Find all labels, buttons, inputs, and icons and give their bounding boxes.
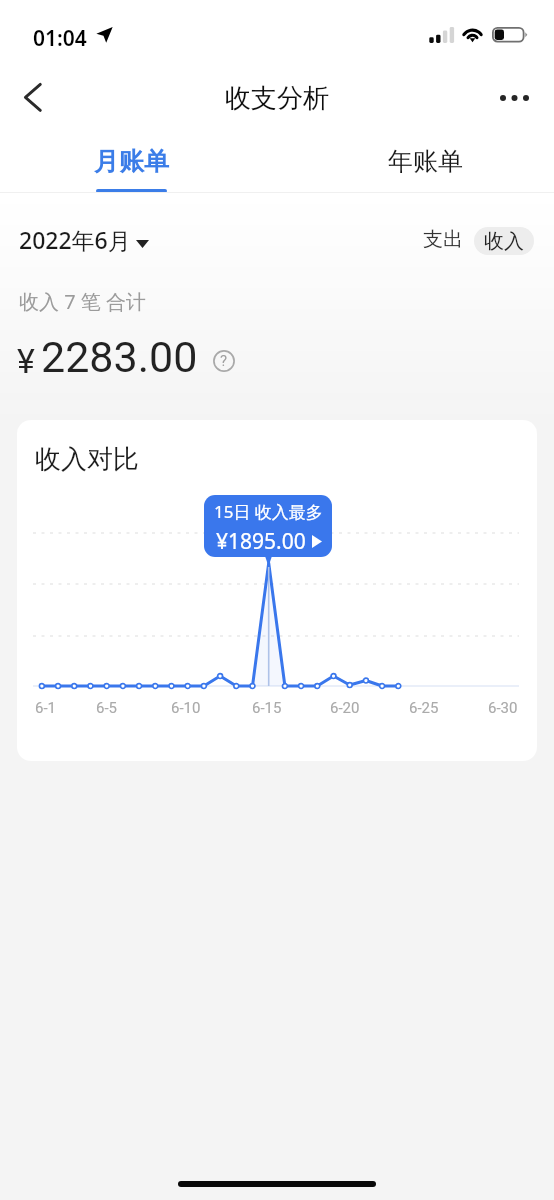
staticText: 6-25 (409, 699, 439, 717)
staticText: 2022年6月 (19, 224, 131, 255)
staticText: 年账单 (388, 146, 463, 177)
staticText: 2283.00 (41, 332, 198, 382)
staticText: 收支分析 (225, 82, 329, 115)
staticText: 6-15 (252, 699, 282, 717)
staticText: 6-5 (96, 699, 118, 717)
staticText: 6-20 (330, 699, 360, 717)
button[interactable]: 月账单 (59, 134, 203, 192)
button[interactable]: Back (8, 70, 58, 126)
button[interactable]: More options (488, 70, 540, 126)
button[interactable]: 收入对比 (17, 420, 537, 761)
staticText: 月账单 (94, 146, 169, 177)
staticText: 收入 (484, 229, 524, 254)
staticText: 01:04 (33, 24, 87, 53)
button[interactable]: 15日 收入最多 (204, 495, 332, 557)
staticText: 15日 收入最多 (214, 500, 323, 523)
staticText: ¥ (17, 341, 35, 381)
staticText: 支出 (423, 227, 463, 252)
staticText: 收入 7 笔 合计 (19, 288, 147, 315)
button[interactable]: 支出 (421, 224, 465, 254)
staticText: 6-30 (488, 699, 518, 717)
button[interactable]: 2022年6月 (12, 214, 160, 264)
staticText: 6-10 (171, 699, 201, 717)
staticText: ¥1895.00 (216, 527, 306, 556)
button[interactable]: Help (213, 350, 235, 372)
staticText: 6-1 (35, 699, 57, 717)
staticText: ? (220, 352, 228, 370)
staticText: 收入对比 (35, 443, 139, 476)
button[interactable]: 年账单 (353, 134, 497, 192)
button[interactable]: 收入 (474, 227, 534, 255)
